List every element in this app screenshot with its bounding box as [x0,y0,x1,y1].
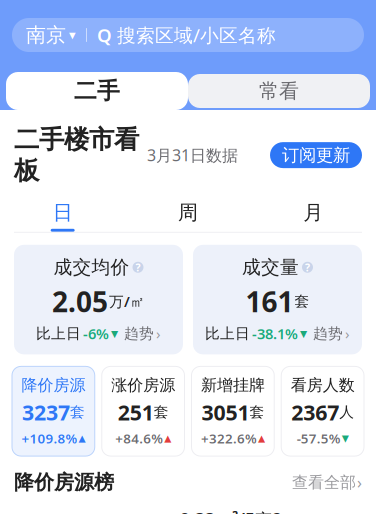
staticText: ▼ [111,328,118,339]
staticText: › [345,324,350,343]
staticText: ▲ [258,433,265,443]
button[interactable]: 9.33m²/5室2厅 [0,501,376,514]
staticText: 3237 [22,398,70,426]
staticText: 南京 [26,23,66,47]
button[interactable]: 成交量 [193,245,362,354]
staticText: 比上日 [36,325,81,343]
staticText: ▲ [164,433,171,443]
staticText: +322.6% [201,429,257,447]
staticText: ▲ [78,433,85,443]
staticText: 搜索区域/小区名称 [117,23,276,47]
button[interactable]: 涨价房源 [102,366,185,456]
button[interactable]: 降价房源 [12,366,95,456]
button[interactable]: 常看 [188,74,370,108]
staticText: ? [135,260,140,274]
staticText: -6% [83,324,109,343]
staticText: › [357,472,362,493]
staticText: 看房人数 [291,375,355,395]
staticText: 查看全部 [292,472,356,492]
button[interactable]: 周 [125,190,251,232]
button[interactable]: 成交均价 [14,245,183,354]
staticText: 套 [294,292,309,310]
staticText: 9.33m²/5室2厅 [180,508,282,514]
staticText: ▾ [69,27,76,42]
staticText: 趋势 [124,325,154,343]
staticText: 2.05 [52,283,108,320]
staticText: 二手楼市看板 [14,124,139,186]
staticText: +84.6% [115,429,163,447]
button[interactable]: 南京 [12,18,364,52]
staticText: 套 [154,403,169,421]
staticText: +109.8% [21,429,77,447]
staticText: -38.1% [252,324,298,343]
staticText: 2367 [291,398,339,426]
staticText: 161 [245,283,293,320]
staticText: 涨价房源 [111,375,175,395]
button[interactable]: 看房人数 [281,366,364,456]
staticText: 月 [303,200,323,225]
staticText: 成交量 [242,256,299,279]
staticText: ▼ [300,328,307,339]
staticText: 日 [53,200,73,225]
staticText: ▼ [342,433,349,443]
staticText: 比上日 [205,325,250,343]
staticText: 3月31日数据 [147,144,238,166]
button[interactable]: 查看全部 [292,472,362,493]
staticText: 251 [118,398,154,426]
staticText: 周 [178,200,198,225]
staticText: 新增挂牌 [201,375,265,395]
staticText: 降价房源 [21,375,85,395]
staticText: 订阅更新 [282,144,350,166]
button[interactable]: 月 [251,190,376,232]
staticText: 3051 [201,398,249,426]
staticText: -57.5% [297,429,341,447]
staticText: 降价房源榜 [14,470,114,495]
staticText: 二手 [74,77,120,105]
button[interactable]: 订阅更新 [270,142,362,168]
staticText: 趋势 [313,325,343,343]
button[interactable]: 二手 [6,72,188,110]
staticText: ? [305,260,310,274]
staticText: 常看 [259,79,299,103]
staticText: 人 [339,403,354,421]
staticText: 万/㎡ [109,292,145,311]
staticText: 套 [249,403,264,421]
staticText: Q [97,23,112,47]
staticText: › [156,324,161,343]
staticText: 成交均价 [53,256,129,279]
staticText: 套 [70,403,85,421]
button[interactable]: 日 [0,190,125,232]
button[interactable]: 新增挂牌 [191,366,274,456]
